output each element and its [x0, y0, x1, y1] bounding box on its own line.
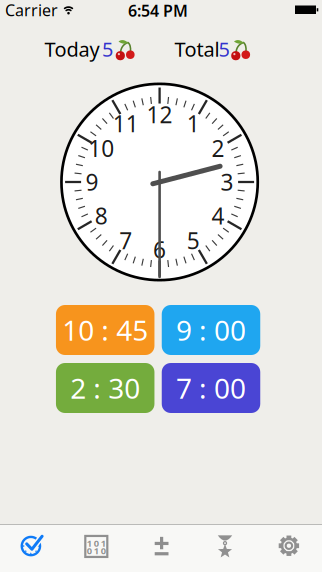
staticText: 12 [147, 99, 173, 129]
staticText: 10 : 45 [62, 311, 148, 349]
staticText: 2 [212, 133, 225, 163]
button[interactable] [129, 524, 193, 572]
staticText: 9 [86, 167, 99, 197]
button[interactable] [193, 524, 258, 572]
staticText: 5 [187, 225, 200, 255]
button[interactable] [0, 524, 64, 572]
staticText: 6 [153, 234, 166, 264]
staticText: Today [44, 36, 99, 62]
button[interactable] [258, 524, 322, 572]
button[interactable]: 10 : 45 [56, 305, 154, 355]
staticText: Total [174, 36, 219, 62]
button[interactable]: 9 : 00 [162, 305, 260, 355]
staticText: 3 [221, 167, 234, 197]
staticText: 7 [119, 225, 132, 255]
staticText: 5 [102, 36, 113, 62]
button[interactable]: 2 : 30 [56, 363, 154, 413]
staticText: 7 : 00 [176, 369, 246, 407]
staticText: 2 : 30 [70, 369, 140, 407]
staticText: 5 [218, 36, 229, 62]
staticText: 9 : 00 [176, 311, 246, 349]
staticText: 10 [88, 133, 114, 163]
staticText: 6:54 PM [128, 0, 188, 21]
staticText: 4 [212, 201, 225, 231]
staticText: 11 [113, 108, 139, 139]
staticText: 8 [95, 201, 108, 231]
staticText: 0 1 0 [87, 544, 106, 557]
staticText: 1 [187, 108, 200, 139]
button[interactable]: 1 0 1 [64, 524, 129, 572]
staticText: 1 0 1 [87, 537, 106, 549]
button[interactable]: 7 : 00 [162, 363, 260, 413]
staticText: Carrier [5, 0, 58, 21]
